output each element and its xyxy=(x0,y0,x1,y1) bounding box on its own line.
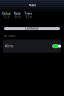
staticText: SETTINGS xyxy=(4,34,15,38)
staticText: Continue xyxy=(25,27,39,30)
staticText: Rate xyxy=(14,12,21,15)
staticText: Value xyxy=(2,12,11,15)
staticText: 86% xyxy=(14,15,20,19)
staticText: Time xyxy=(24,12,32,15)
staticText: Focus xyxy=(28,3,35,7)
button[interactable]: Continue xyxy=(4,27,60,30)
staticText: 12.4 xyxy=(3,15,10,19)
staticText: Alerts xyxy=(5,44,13,48)
button[interactable]: Alerts xyxy=(3,40,61,53)
staticText: 42m xyxy=(25,15,31,19)
